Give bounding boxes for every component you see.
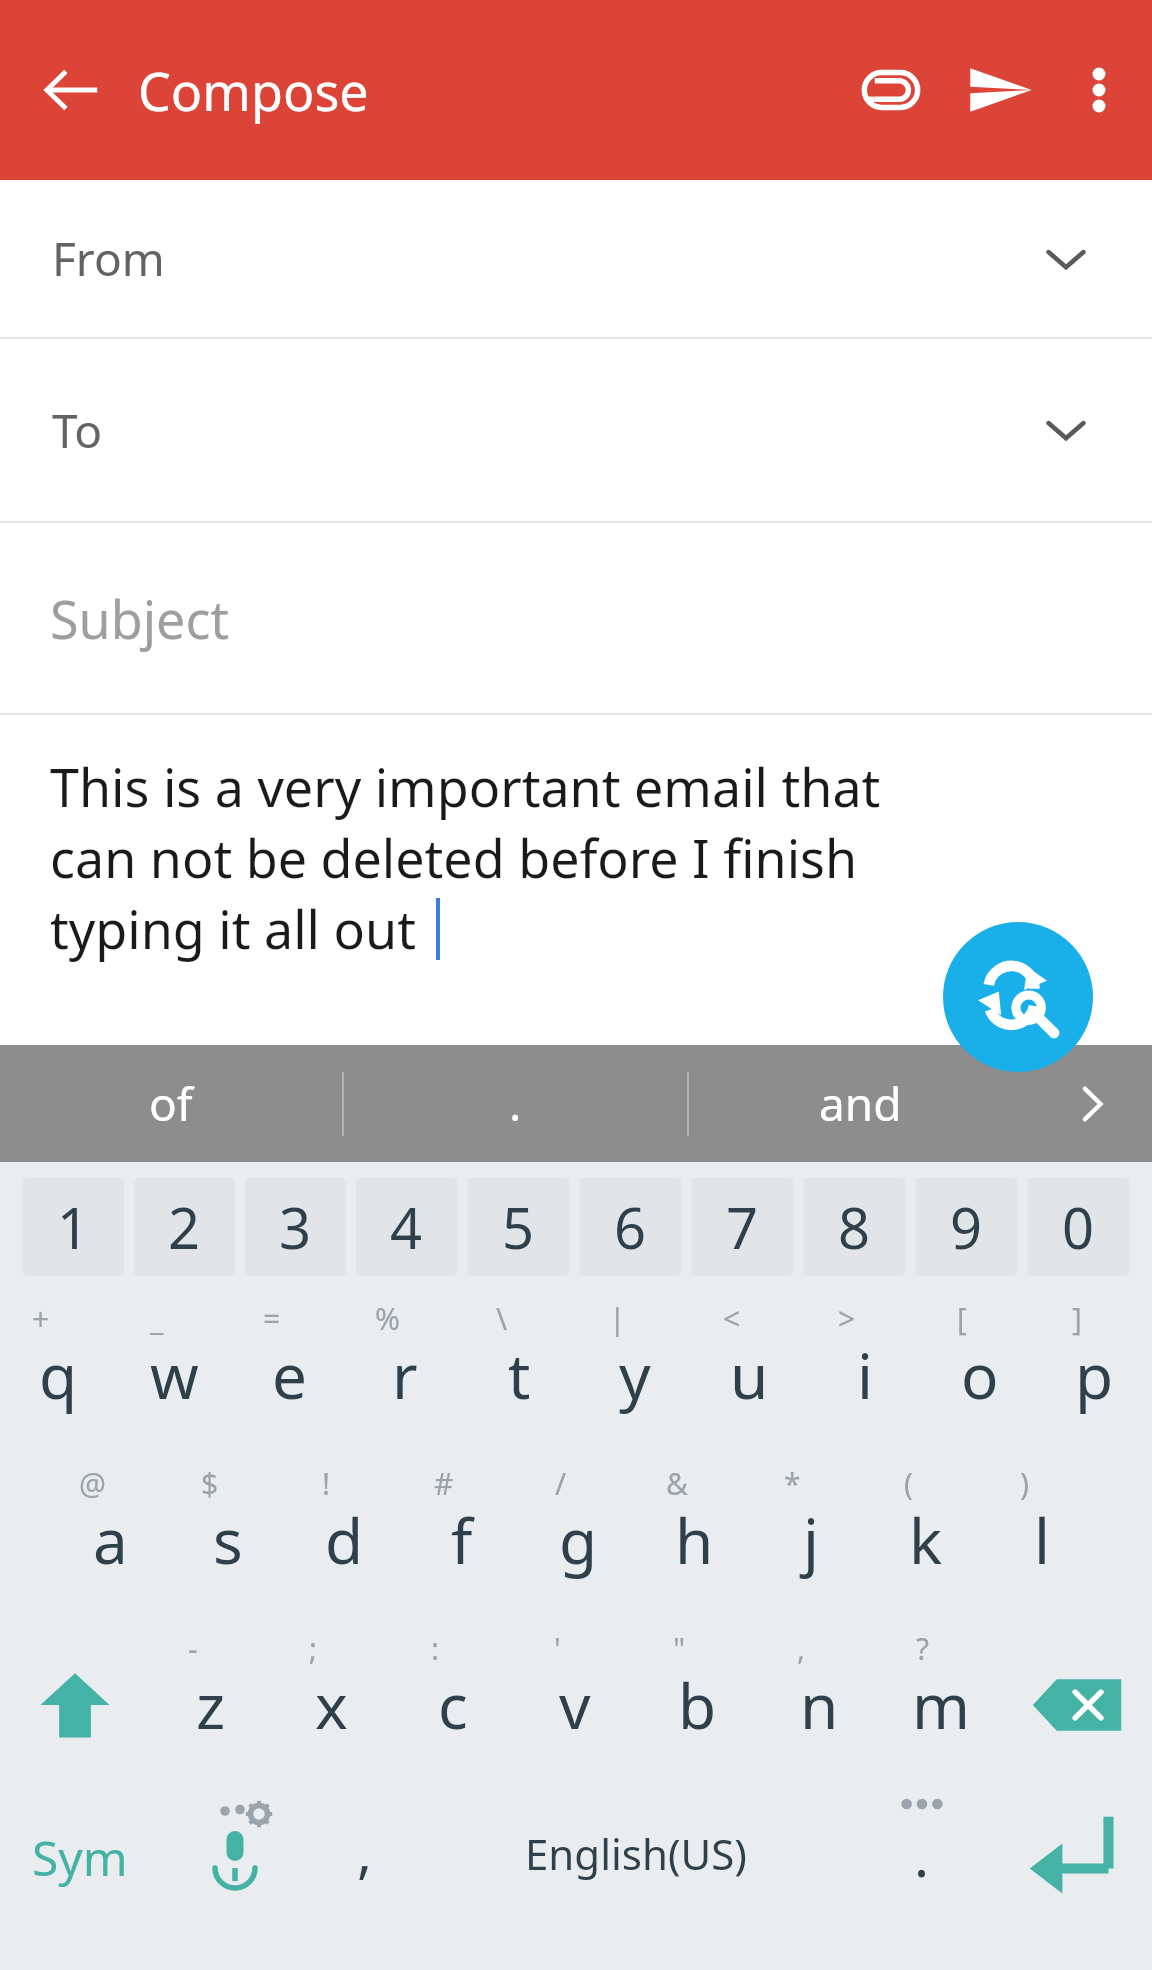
button[interactable]: Send [946,35,1056,145]
staticText: k [909,1498,943,1582]
button[interactable]: English(US) [420,1787,852,1970]
button[interactable]: * [752,1457,868,1622]
staticText: , [357,1813,373,1889]
staticText: n [800,1663,839,1747]
staticText: q [39,1333,78,1417]
button[interactable]: @ [52,1457,169,1622]
button[interactable]: Subject [0,523,1152,713]
button[interactable]: _ [116,1292,232,1457]
button[interactable]: & [636,1457,752,1622]
staticText: 5 [502,1189,535,1265]
staticText: ' [554,1628,561,1669]
staticText: * [784,1463,801,1504]
staticText: z [196,1663,226,1747]
staticText: % [375,1298,400,1339]
staticText: can not be deleted before I finish [50,822,858,893]
button[interactable]: ' [514,1622,636,1787]
staticText: = [263,1298,281,1339]
button[interactable]: 4 [356,1178,457,1276]
button[interactable]: $ [169,1457,286,1622]
button[interactable]: 2 [134,1178,235,1276]
button[interactable]: > [807,1292,922,1457]
button[interactable]: 1 [23,1178,124,1276]
staticText: i [857,1333,873,1417]
button[interactable]: % [347,1292,462,1457]
button[interactable]: 9 [915,1178,1017,1276]
staticText: ] [1072,1298,1082,1339]
button[interactable]: This is a very important email that [0,715,1152,1045]
button[interactable]: - [150,1622,271,1787]
button[interactable]: 7 [691,1178,793,1276]
button[interactable]: " [636,1622,758,1787]
button[interactable]: Back [24,42,120,138]
staticText: < [723,1298,741,1339]
staticText: - [188,1628,198,1669]
button[interactable]: Backspace [1002,1622,1152,1787]
button[interactable]: . [852,1787,992,1970]
button[interactable]: and [689,1045,1032,1162]
button[interactable]: To [0,339,1152,521]
button[interactable]: Search and replace [943,922,1093,1072]
button[interactable]: # [403,1457,520,1622]
staticText: . [509,1072,522,1135]
staticText: ? [916,1628,930,1669]
staticText: r [392,1333,418,1417]
button[interactable]: ( [868,1457,984,1622]
button[interactable]: = [232,1292,347,1457]
button[interactable]: : [392,1622,514,1787]
button[interactable]: Voice input [160,1787,310,1970]
staticText: of [149,1072,193,1135]
button[interactable]: ? [880,1622,1002,1787]
staticText: + [32,1298,50,1339]
staticText: b [678,1663,717,1747]
button[interactable]: ) [984,1457,1100,1622]
button[interactable]: of [0,1045,342,1162]
button[interactable]: More options [1056,42,1142,138]
staticText: y [619,1333,651,1417]
staticText: ) [1020,1463,1029,1504]
button[interactable]: Attach [836,35,946,145]
staticText: 6 [614,1189,647,1265]
staticText: f [451,1498,473,1582]
button[interactable]: [ [922,1292,1037,1457]
button[interactable]: ] [1037,1292,1152,1457]
staticText: l [1034,1498,1050,1582]
staticText: o [961,1333,999,1417]
button[interactable]: + [0,1292,116,1457]
button[interactable]: | [577,1292,692,1457]
staticText: , [797,1628,806,1669]
staticText: . [914,1817,930,1893]
staticText: To [52,399,103,462]
button[interactable]: , [758,1622,880,1787]
button[interactable]: From [0,180,1152,337]
button[interactable]: \ [462,1292,577,1457]
staticText: English(US) [525,1825,747,1882]
button[interactable]: 0 [1027,1178,1129,1276]
staticText: g [559,1498,598,1582]
staticText: x [315,1663,348,1747]
staticText: Subject [50,583,230,654]
button[interactable]: < [692,1292,807,1457]
staticText: @ [79,1463,106,1504]
button[interactable]: Shift [0,1622,150,1787]
button[interactable]: Sym [0,1787,160,1970]
staticText: " [673,1628,686,1669]
staticText: typing it all out [50,893,416,964]
button[interactable]: / [520,1457,636,1622]
staticText: _ [150,1298,164,1339]
button[interactable]: More suggestions [1032,1045,1152,1162]
button[interactable]: ; [271,1622,392,1787]
button[interactable]: 6 [579,1178,681,1276]
button[interactable]: . [344,1045,687,1162]
staticText: t [508,1333,531,1417]
button[interactable]: 8 [803,1178,905,1276]
staticText: m [912,1663,970,1747]
staticText: : [431,1628,440,1669]
button[interactable]: 3 [245,1178,346,1276]
staticText: 9 [950,1189,983,1265]
staticText: Sym [32,1825,128,1890]
button[interactable]: Enter [992,1787,1152,1970]
button[interactable]: , [310,1787,420,1970]
button[interactable]: ! [286,1457,403,1622]
button[interactable]: 5 [467,1178,569,1276]
